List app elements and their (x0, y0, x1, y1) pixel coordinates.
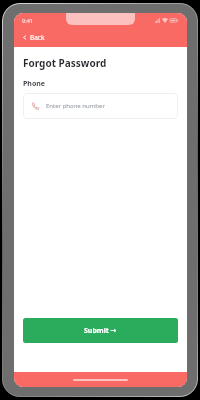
other: Phone (31, 102, 39, 110)
staticText: Phone (23, 79, 46, 89)
staticText: Submit → (84, 326, 117, 336)
button[interactable]: Phone (23, 93, 178, 119)
staticText: 9:41 (22, 17, 33, 24)
button[interactable]: Submit → (23, 318, 178, 343)
button[interactable]: Back (14, 28, 187, 47)
staticText: Forgot Password (23, 56, 107, 70)
staticText: Enter phone number (46, 102, 105, 110)
staticText: Back (30, 33, 45, 42)
